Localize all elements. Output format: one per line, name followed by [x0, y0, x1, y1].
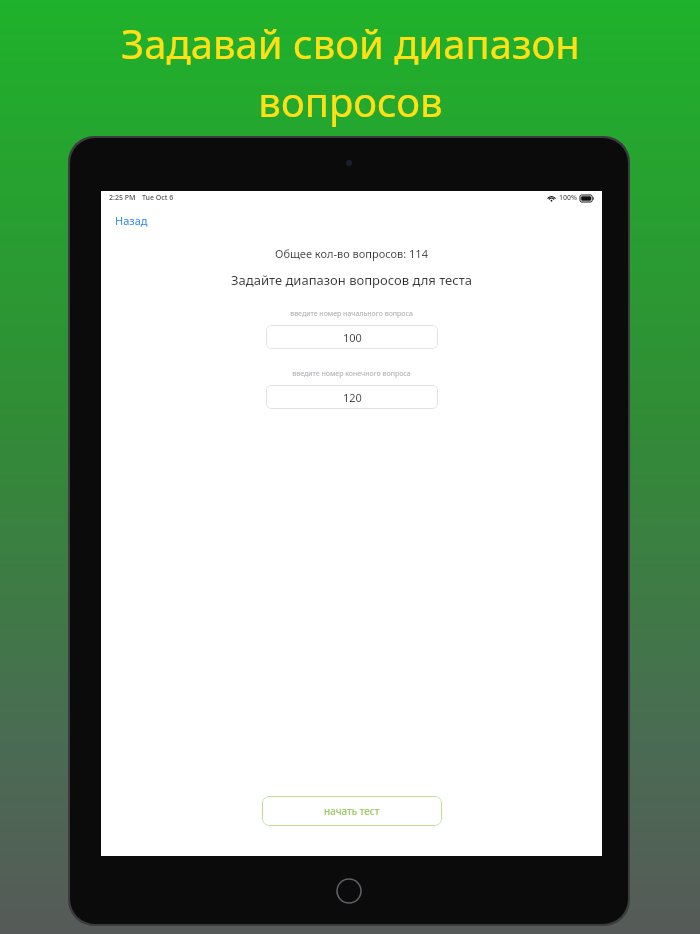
staticText: 100%: [559, 193, 577, 203]
button[interactable]: 120: [266, 385, 438, 409]
staticText: Назад: [115, 213, 148, 228]
button[interactable]: 100: [266, 325, 438, 349]
staticText: введите номер начального вопроса: [290, 309, 413, 319]
staticText: Задайте диапазон вопросов для теста: [101, 271, 602, 289]
staticText: Общее кол-во вопросов: 114: [101, 246, 602, 261]
staticText: 2:25 PM: [109, 193, 136, 203]
staticText: вопросов: [258, 74, 443, 128]
button[interactable]: Назад: [111, 211, 152, 230]
staticText: 100: [343, 330, 362, 345]
staticText: введите номер конечного вопроса: [292, 369, 411, 379]
button[interactable]: начать тест: [262, 796, 442, 826]
staticText: Tue Oct 6: [142, 193, 174, 203]
staticText: начать тест: [324, 804, 380, 818]
staticText: 120: [343, 390, 362, 405]
staticText: Задавай свой диапазон: [121, 16, 580, 70]
